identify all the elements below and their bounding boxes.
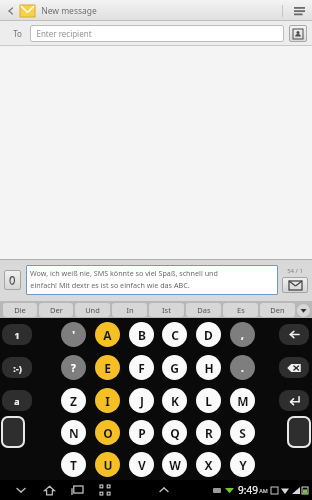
staticText: einfach! Mit dextr es ist so einfach wie…: [30, 280, 190, 290]
staticText: .: [241, 361, 244, 375]
staticText: M: [237, 393, 249, 409]
staticText: To: [13, 28, 22, 39]
button[interactable]: Es: [223, 303, 258, 317]
staticText: Ist: [162, 305, 171, 315]
button[interactable]: V: [129, 452, 154, 477]
staticText: J: [140, 393, 144, 409]
button[interactable]: Space: [1, 416, 25, 448]
button[interactable]: M: [230, 388, 255, 413]
button[interactable]: Wow, ich weiß nie, SMS könnte so viel Sp…: [26, 265, 278, 295]
button[interactable]: Screenshot: [94, 480, 116, 500]
button[interactable]: In: [112, 303, 147, 317]
button[interactable]: More options: [290, 2, 308, 20]
staticText: :-): [13, 362, 22, 374]
button[interactable]: Der: [39, 303, 73, 317]
button[interactable]: More suggestions: [296, 303, 310, 317]
button[interactable]: Home: [38, 480, 60, 500]
staticText: Y: [239, 457, 247, 473]
button[interactable]: Den: [260, 303, 295, 317]
button[interactable]: S: [230, 420, 255, 445]
button[interactable]: E: [95, 355, 120, 380]
staticText: Wow, ich weiß nie, SMS könnte so viel Sp…: [30, 268, 218, 278]
button[interactable]: Shift: [287, 416, 311, 448]
button[interactable]: W: [162, 452, 187, 477]
staticText: R: [205, 425, 213, 441]
button[interactable]: F: [129, 355, 154, 380]
button[interactable]: H: [196, 355, 221, 380]
button[interactable]: Hide keyboard: [10, 480, 32, 500]
button[interactable]: Back: [4, 4, 18, 18]
button[interactable]: U: [95, 452, 120, 477]
staticText: Enter recipient: [36, 28, 92, 39]
button[interactable]: Und: [75, 303, 110, 317]
button[interactable]: J: [129, 388, 154, 413]
button[interactable]: Delete: [279, 357, 309, 378]
button[interactable]: .: [230, 355, 255, 380]
button[interactable]: O: [95, 420, 120, 445]
staticText: Den: [270, 305, 285, 315]
staticText: N: [69, 425, 79, 441]
staticText: AM: [259, 487, 268, 494]
staticText: a: [14, 395, 20, 407]
button[interactable]: A: [95, 322, 120, 347]
staticText: S: [239, 425, 246, 441]
staticText: D: [204, 327, 213, 343]
staticText: X: [204, 457, 213, 473]
button[interactable]: Z: [61, 388, 86, 413]
button[interactable]: Recent apps: [66, 480, 88, 500]
button[interactable]: Q: [162, 420, 187, 445]
staticText: B: [138, 327, 146, 343]
button[interactable]: ,: [230, 322, 255, 347]
button[interactable]: R: [196, 420, 221, 445]
staticText: W: [169, 457, 181, 473]
staticText: Das: [197, 305, 211, 315]
staticText: 1: [14, 329, 20, 341]
staticText: P: [138, 425, 146, 441]
staticText: Der: [50, 305, 63, 315]
button[interactable]: T: [61, 452, 86, 477]
button[interactable]: Choose contact: [289, 25, 307, 42]
button[interactable]: 1: [2, 324, 32, 345]
button[interactable]: G: [162, 355, 187, 380]
staticText: U: [103, 457, 113, 473]
staticText: A: [103, 327, 112, 343]
button[interactable]: Ist: [149, 303, 184, 317]
button[interactable]: Enter: [279, 390, 309, 411]
staticText: New message: [41, 5, 97, 17]
button[interactable]: I: [95, 388, 120, 413]
button[interactable]: Attach: [4, 270, 21, 290]
button[interactable]: Die: [3, 303, 37, 317]
staticText: F: [138, 360, 145, 376]
staticText: ': [72, 328, 75, 342]
button[interactable]: ?: [61, 355, 86, 380]
button[interactable]: K: [162, 388, 187, 413]
button[interactable]: Y: [230, 452, 255, 477]
button[interactable]: Send: [282, 277, 308, 293]
staticText: L: [205, 393, 212, 409]
button[interactable]: a: [2, 390, 32, 411]
staticText: I: [105, 393, 110, 409]
button[interactable]: Das: [186, 303, 221, 317]
button[interactable]: P: [129, 420, 154, 445]
staticText: G: [170, 360, 179, 376]
button[interactable]: :-): [2, 357, 32, 378]
staticText: E: [104, 360, 111, 376]
staticText: ?: [71, 361, 76, 375]
button[interactable]: X: [196, 452, 221, 477]
staticText: Und: [85, 305, 100, 315]
staticText: 54 / 1: [287, 267, 303, 275]
button[interactable]: N: [61, 420, 86, 445]
button[interactable]: Expand: [153, 480, 175, 500]
staticText: T: [70, 457, 77, 473]
button[interactable]: ': [61, 322, 86, 347]
staticText: ,: [241, 328, 244, 342]
button[interactable]: L: [196, 388, 221, 413]
staticText: 9:49: [238, 483, 258, 497]
staticText: Es: [237, 305, 245, 315]
button[interactable]: B: [129, 322, 154, 347]
button[interactable]: Back arrow: [279, 324, 309, 345]
staticText: V: [138, 457, 146, 473]
button[interactable]: Enter recipient: [30, 25, 284, 42]
button[interactable]: D: [196, 322, 221, 347]
button[interactable]: C: [162, 322, 187, 347]
